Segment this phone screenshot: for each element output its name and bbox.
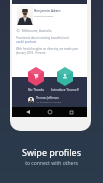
staticText: Introduce Yourself (51, 88, 79, 92)
staticText: Passionate about creating beautiful and (16, 36, 69, 40)
staticText: Swipe profiles (22, 146, 81, 158)
button[interactable]: Recents (66, 107, 76, 117)
staticText: Benjamin Adam (34, 8, 61, 13)
button[interactable]: Home (45, 107, 55, 117)
button[interactable]: Back (23, 107, 33, 117)
staticText: No Thanks (28, 88, 44, 92)
button[interactable]: Introduce Yourself (50, 67, 80, 92)
staticText: With fresh thoughts on diversity, we mad… (16, 47, 79, 51)
staticText: UX designer at Google (36, 100, 62, 103)
button[interactable]: Melbourne, Australia (16, 29, 52, 33)
button[interactable]: No Thanks (21, 67, 51, 92)
staticText: Melbourne, Australia (22, 29, 52, 33)
staticText: to connect with others (25, 160, 78, 167)
staticText: Product Designer (34, 14, 54, 17)
button[interactable]: Thomas Jefferson (28, 96, 62, 103)
staticText: January 2018 - Present (16, 51, 46, 55)
staticText: useful products (16, 40, 37, 44)
staticText: Thomas Jefferson (36, 96, 59, 100)
